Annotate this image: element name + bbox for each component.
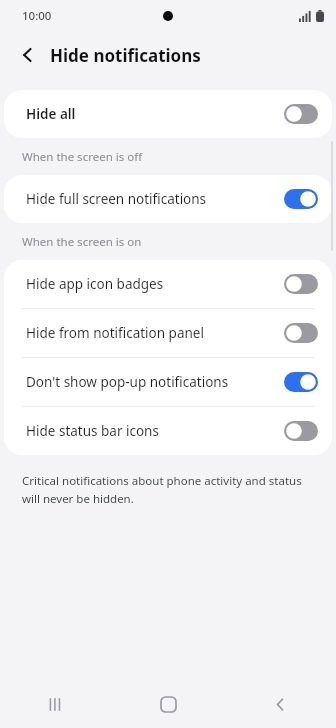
staticText: Don't show pop-up notifications	[26, 373, 284, 391]
button[interactable]: Back	[12, 39, 44, 71]
button[interactable]: Back	[224, 680, 336, 728]
button[interactable]: Recent apps	[0, 680, 112, 728]
staticText: When the screen is off	[22, 149, 143, 165]
staticText: Hide from notification panel	[26, 324, 284, 342]
button[interactable]: On	[284, 372, 318, 392]
button[interactable]: Hide app icon badges	[4, 260, 332, 308]
button[interactable]: Don't show pop-up notifications	[4, 358, 332, 406]
button[interactable]: Hide all	[4, 90, 332, 138]
button[interactable]: Hide full screen notifications	[4, 175, 332, 223]
button[interactable]: Off	[284, 104, 318, 124]
staticText: When the screen is on	[22, 234, 142, 250]
staticText: Hide app icon badges	[26, 275, 284, 293]
staticText: Critical notifications about phone activ…	[22, 473, 310, 506]
button[interactable]: Home	[112, 680, 224, 728]
staticText: Hide all	[26, 105, 284, 123]
button[interactable]: Hide from notification panel	[4, 309, 332, 357]
staticText: Hide notifications	[50, 44, 201, 67]
staticText: Hide full screen notifications	[26, 190, 284, 208]
button[interactable]: Hide status bar icons	[4, 407, 332, 455]
staticText: 10:00	[22, 8, 52, 24]
button[interactable]: Off	[284, 323, 318, 343]
button[interactable]: On	[284, 189, 318, 209]
button[interactable]: Off	[284, 421, 318, 441]
button[interactable]: Off	[284, 274, 318, 294]
staticText: Hide status bar icons	[26, 422, 284, 440]
